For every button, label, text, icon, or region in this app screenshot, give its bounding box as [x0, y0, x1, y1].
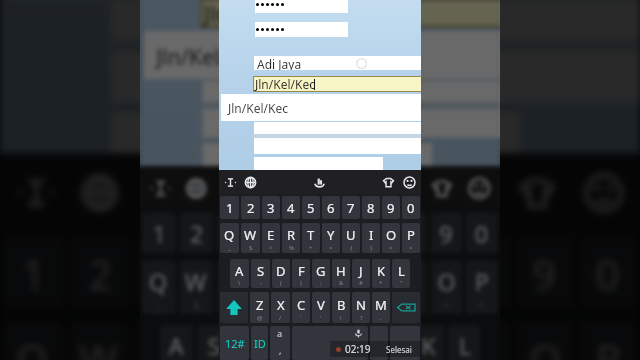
button[interactable]: 6 — [322, 196, 340, 219]
button[interactable]: R — [252, 260, 284, 314]
button[interactable]: U — [390, 321, 447, 360]
button[interactable]: F — [270, 325, 302, 360]
button[interactable]: W — [241, 223, 260, 253]
button[interactable]: R — [199, 321, 257, 360]
button[interactable]: Z — [250, 292, 269, 323]
button[interactable]: T — [263, 321, 320, 360]
button[interactable]: 9 — [382, 196, 400, 219]
button[interactable]: L — [448, 325, 480, 360]
button[interactable]: Symbols — [370, 326, 388, 360]
button[interactable]: Space — [292, 326, 368, 360]
button[interactable]: 8 — [362, 196, 380, 219]
button[interactable]: Shift — [220, 292, 248, 323]
button[interactable]: 9 — [430, 212, 462, 253]
button[interactable]: C — [292, 292, 310, 323]
button[interactable]: 5 — [263, 236, 320, 309]
button[interactable]: O — [382, 223, 400, 253]
button[interactable]: 4 — [199, 236, 257, 309]
button[interactable]: 2 — [70, 236, 130, 309]
button[interactable]: Q — [142, 260, 176, 314]
button[interactable]: W — [179, 260, 213, 314]
button[interactable]: G — [306, 325, 338, 360]
button[interactable]: I — [395, 260, 427, 314]
button[interactable]: Jln/Kel/Kec — [201, 0, 500, 27]
button[interactable]: Text editing — [149, 177, 172, 200]
button[interactable]: M — [372, 292, 390, 323]
button[interactable]: P — [402, 223, 420, 253]
button[interactable]: 12# — [220, 326, 249, 360]
button[interactable]: T — [302, 223, 320, 253]
button[interactable]: Q — [3, 321, 63, 360]
button[interactable]: F — [292, 259, 310, 288]
button[interactable]: 4 — [282, 196, 300, 219]
button[interactable]: E — [262, 223, 280, 253]
button[interactable]: Emoji — [468, 177, 491, 200]
button[interactable]: Backspace — [392, 292, 420, 323]
button[interactable]: U — [359, 260, 391, 314]
button[interactable]: N — [352, 292, 370, 323]
button[interactable]: 1 — [220, 196, 239, 219]
button[interactable]: Y — [324, 260, 356, 314]
button[interactable]: 7 — [342, 196, 360, 219]
button[interactable]: Handwriting — [313, 176, 326, 189]
button[interactable]: Adi Jaya — [254, 56, 421, 70]
button[interactable]: R — [282, 223, 300, 253]
button[interactable]: 0 — [466, 212, 498, 253]
button[interactable]: Q — [220, 223, 239, 253]
button[interactable]: A — [230, 259, 249, 288]
button[interactable]: 5 — [288, 212, 320, 253]
button[interactable]: 6 — [324, 212, 356, 253]
button[interactable]: 8 — [453, 236, 510, 309]
button[interactable]: Y — [326, 321, 383, 360]
button[interactable]: Handwriting — [298, 172, 339, 213]
button[interactable]: G — [312, 259, 330, 288]
button[interactable]: 3 — [136, 236, 193, 309]
button[interactable]: I — [453, 321, 510, 360]
button[interactable]: H — [332, 259, 350, 288]
button[interactable]: S — [251, 259, 270, 288]
button[interactable]: Theme — [430, 177, 453, 200]
button[interactable] — [255, 22, 348, 37]
button[interactable]: U — [342, 223, 360, 253]
button[interactable]: D — [272, 259, 290, 288]
button[interactable]: 8 — [395, 212, 427, 253]
button[interactable]: ID — [251, 326, 268, 360]
button[interactable]: 5 — [302, 196, 320, 219]
button[interactable]: A — [160, 325, 194, 360]
button[interactable]: P — [580, 321, 637, 360]
button[interactable]: B — [332, 292, 350, 323]
button[interactable]: 0 — [402, 196, 420, 219]
button[interactable]: Jln/Kel/Kec — [221, 94, 421, 121]
button[interactable]: 1 — [142, 212, 176, 253]
button[interactable]: Emoji — [583, 172, 624, 213]
button[interactable]: a — [270, 326, 290, 360]
button[interactable]: 2 — [179, 212, 213, 253]
button[interactable]: O — [516, 321, 574, 360]
button[interactable]: Jln/Kel/Kec — [144, 31, 500, 79]
button[interactable]: 4 — [252, 212, 284, 253]
button[interactable]: Selesai — [386, 344, 412, 355]
button[interactable]: E — [136, 321, 193, 360]
button[interactable]: J — [352, 259, 370, 288]
button[interactable]: 3 — [217, 212, 249, 253]
button[interactable]: V — [312, 292, 330, 323]
button[interactable]: Handwriting — [307, 177, 331, 200]
button[interactable]: Change language — [185, 177, 208, 200]
button[interactable]: T — [288, 260, 320, 314]
button[interactable]: Emoji — [403, 176, 416, 189]
button[interactable]: X — [271, 292, 290, 323]
button[interactable] — [255, 0, 348, 13]
button[interactable]: I — [362, 223, 380, 253]
button[interactable]: Theme — [382, 176, 395, 189]
button[interactable]: D — [235, 325, 267, 360]
button[interactable]: 2 — [241, 196, 260, 219]
button[interactable]: Text editing — [16, 172, 57, 213]
button[interactable]: 7 — [390, 236, 447, 309]
button[interactable]: Jln/Kel/Kec — [253, 76, 421, 92]
button[interactable]: Change language — [244, 176, 257, 189]
button[interactable]: 7 — [359, 212, 391, 253]
button[interactable]: O — [430, 260, 462, 314]
button[interactable]: W — [70, 321, 130, 360]
button[interactable]: 6 — [326, 236, 383, 309]
